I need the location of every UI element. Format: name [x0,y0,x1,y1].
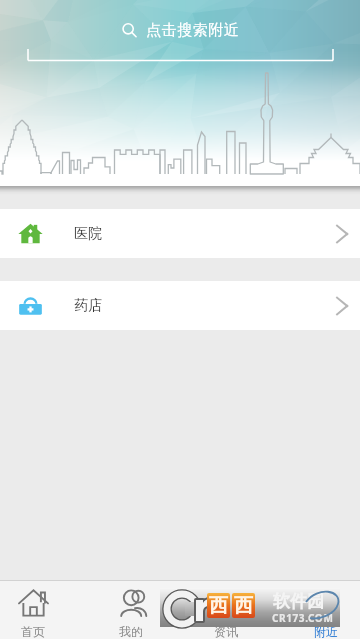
staticText: 附近 [314,624,338,639]
staticText: 医院 [74,225,102,243]
staticText: 资讯 [214,624,238,639]
button[interactable]: Profile [86,581,176,639]
staticText: 我的 [119,624,143,639]
button[interactable]: News [181,581,271,639]
button[interactable]: 医院 [0,209,360,258]
staticText: 药店 [74,297,102,315]
staticText: 西 [234,594,253,618]
button[interactable]: Nearby [281,581,360,639]
button[interactable]: 药店 [0,281,360,330]
button[interactable]: 点击搜索附近 [0,0,360,61]
staticText: 首页 [21,624,45,639]
staticText: 西 [209,594,228,618]
staticText: CR173.COM [272,611,334,625]
staticText: 软件园 [273,591,324,612]
button[interactable]: Home [0,581,78,639]
staticText: 点击搜索附近 [146,21,239,40]
